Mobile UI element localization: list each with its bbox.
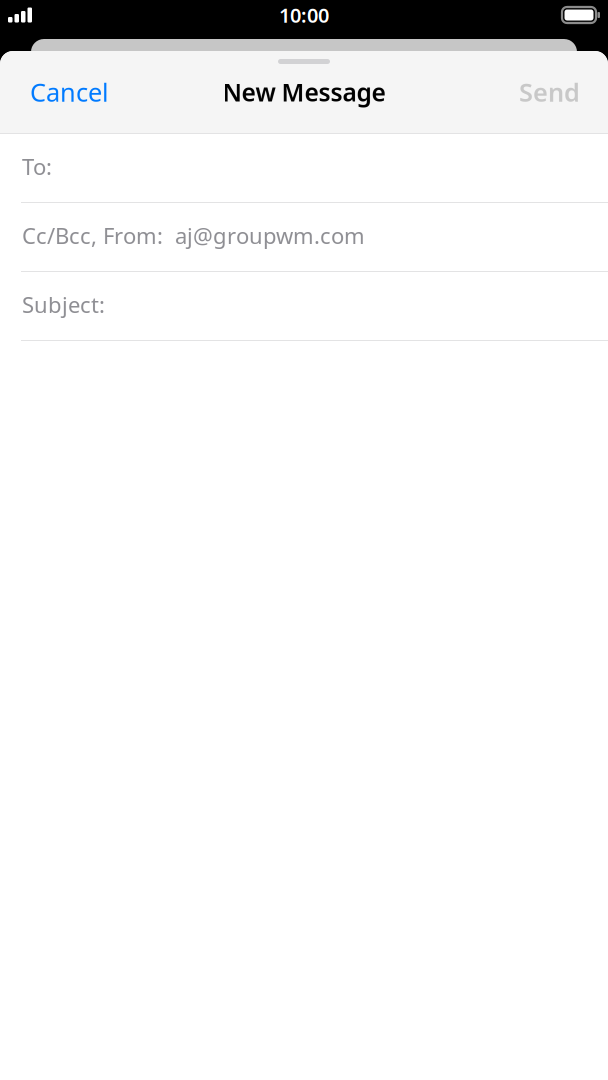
staticText: 10:00 <box>279 1 329 29</box>
button[interactable]: Subject: <box>0 272 608 341</box>
staticText: New Message <box>222 75 385 109</box>
staticText: aj@groupwm.com <box>163 220 365 250</box>
button[interactable]: Cancel <box>0 64 125 120</box>
staticText: To: <box>22 151 52 181</box>
staticText: Cc/Bcc, From: <box>22 220 163 250</box>
button[interactable]: Send <box>503 64 608 120</box>
staticText: Subject: <box>22 289 105 319</box>
staticText: Cancel <box>30 75 109 109</box>
button[interactable]: Cc/Bcc, From: <box>0 203 608 272</box>
staticText: Send <box>519 75 580 109</box>
button[interactable]: To: <box>0 134 608 203</box>
